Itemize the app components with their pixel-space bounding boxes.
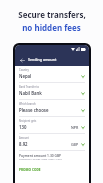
button[interactable]: PROMO CODE bbox=[19, 168, 41, 172]
staticText: 8.92 bbox=[19, 141, 28, 147]
staticText: 130 bbox=[19, 124, 27, 130]
staticText: Bank Transfer to bbox=[19, 85, 40, 89]
staticText: Which branch bbox=[19, 102, 36, 106]
staticText: GBP bbox=[71, 142, 79, 147]
button[interactable]: Bank Transfer to bbox=[19, 83, 85, 100]
staticText: NPR bbox=[71, 125, 79, 130]
staticText: Nabil Bank bbox=[19, 90, 42, 96]
staticText: Nepal bbox=[19, 73, 32, 79]
staticText: PROMO CODE bbox=[19, 168, 41, 172]
staticText: Secure transfers, bbox=[18, 9, 86, 20]
staticText: Payment amount 1.30 GBP bbox=[19, 153, 62, 157]
staticText: Sending amount bbox=[28, 57, 57, 62]
staticText: Please choose bbox=[19, 107, 49, 113]
button[interactable]: Amount bbox=[19, 134, 85, 151]
staticText: Country bbox=[19, 68, 29, 72]
button[interactable]: Country bbox=[19, 66, 85, 83]
button[interactable]: Which branch bbox=[19, 100, 85, 117]
staticText: Conversion 1.00 GBP • Rate 1 GBP = 146.5 bbox=[19, 158, 62, 161]
button[interactable]: Back bbox=[18, 56, 26, 64]
button[interactable]: Recipient gets bbox=[19, 117, 85, 134]
staticText: Amount bbox=[19, 136, 29, 140]
staticText: no hidden fees bbox=[22, 22, 81, 33]
staticText: Recipient gets bbox=[19, 119, 37, 123]
